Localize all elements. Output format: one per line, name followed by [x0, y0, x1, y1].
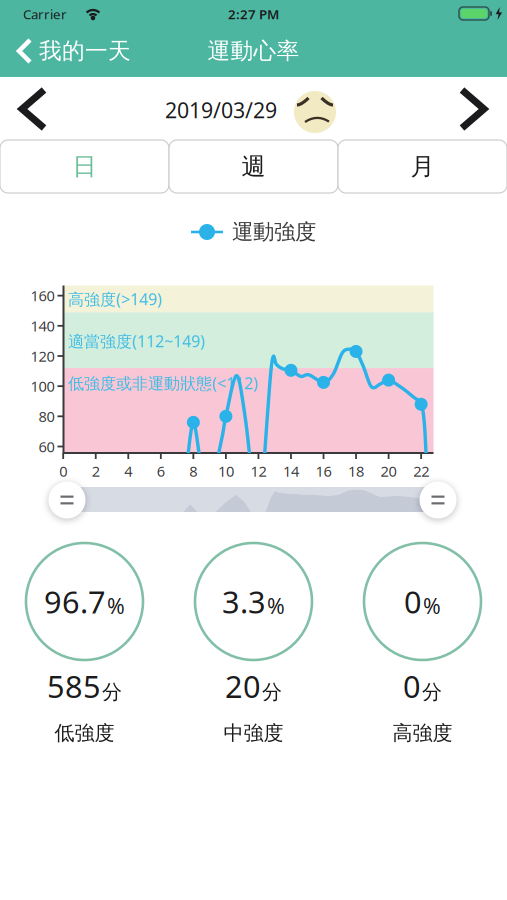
staticText: 100	[30, 376, 54, 396]
staticText: 140	[30, 316, 54, 336]
staticText: 低強度	[54, 721, 114, 745]
staticText: %	[107, 591, 125, 620]
staticText: 運動心率	[207, 37, 299, 65]
staticText: 8	[189, 461, 197, 481]
staticText: 16	[315, 461, 331, 481]
staticText: 2	[92, 461, 100, 481]
staticText: 585	[47, 666, 101, 706]
button[interactable]: 我的一天	[17, 37, 131, 65]
staticText: 120	[30, 346, 54, 366]
button[interactable]: 月	[338, 140, 507, 193]
button[interactable]: 日	[0, 140, 169, 193]
button[interactable]: Range end	[419, 481, 456, 518]
staticText: 22	[413, 461, 429, 481]
button[interactable]: Next day	[458, 87, 488, 131]
staticText: 週	[241, 152, 265, 181]
staticText: %	[423, 591, 441, 620]
button[interactable]: 週	[169, 140, 338, 193]
staticText: 2019/03/29	[165, 96, 277, 124]
staticText: 分	[422, 680, 442, 704]
staticText: 我的一天	[39, 37, 131, 65]
staticText: 高強度(>149)	[68, 288, 162, 310]
button[interactable]: Range start	[48, 481, 85, 518]
staticText: 10	[218, 461, 234, 481]
staticText: 160	[30, 286, 54, 305]
staticText: 0	[404, 581, 422, 622]
staticText: 80	[38, 407, 54, 426]
staticText: 12	[250, 461, 266, 481]
staticText: 96.7	[44, 581, 106, 622]
staticText: 20	[225, 666, 261, 706]
staticText: 20	[381, 461, 397, 481]
staticText: 適當強度(112~149)	[68, 330, 205, 352]
staticText: 6	[157, 461, 165, 481]
staticText: 0	[403, 666, 421, 706]
staticText: 日	[72, 152, 96, 181]
staticText: 高強度	[392, 721, 452, 745]
staticText: Carrier	[23, 5, 67, 23]
staticText: 3.3	[222, 581, 266, 622]
staticText: 14	[283, 461, 299, 481]
staticText: 中強度	[223, 721, 283, 745]
button[interactable]: Previous day	[18, 87, 48, 131]
staticText: 分	[102, 680, 122, 704]
staticText: 0	[59, 461, 67, 481]
staticText: 運動強度	[232, 219, 316, 245]
staticText: 60	[38, 437, 54, 456]
staticText: 18	[348, 461, 364, 481]
staticText: 低強度或非運動狀態(<112)	[68, 372, 258, 394]
staticText: %	[267, 591, 285, 620]
staticText: 2:27 PM	[228, 5, 279, 23]
staticText: 分	[262, 680, 282, 704]
staticText: 月	[410, 152, 434, 181]
staticText: 4	[124, 461, 132, 481]
